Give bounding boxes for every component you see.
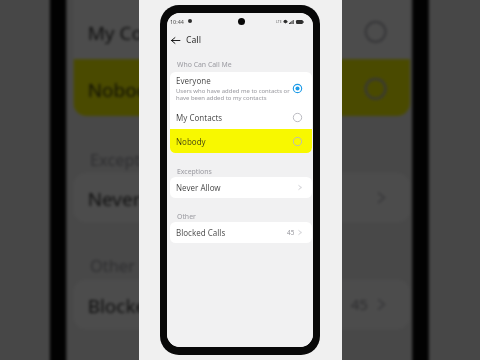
staticText: Blocked Calls [88, 291, 351, 317]
button[interactable]: Back [167, 29, 313, 51]
staticText: Everyone [176, 75, 211, 86]
staticText: My Contacts [88, 19, 365, 45]
button[interactable]: Blocked Calls [73, 279, 410, 329]
staticText: My Contacts [176, 112, 293, 123]
staticText: 45 [351, 294, 370, 315]
staticText: LTE [276, 19, 282, 24]
staticText: Call [186, 34, 202, 46]
button[interactable]: Nobody [73, 59, 410, 116]
button[interactable]: Everyone [73, 0, 410, 2]
staticText: Users who have added me to contacts or h… [176, 87, 290, 102]
staticText: Nobody [176, 136, 293, 147]
staticText: 10:44 [170, 18, 184, 25]
staticText: Blocked Calls [176, 227, 287, 238]
staticText: Who Can Call Me [177, 60, 232, 69]
button[interactable]: Blocked Calls [170, 222, 312, 243]
staticText: Nobody [88, 76, 365, 102]
staticText: 45 [287, 228, 295, 237]
button[interactable]: Never Allow [170, 177, 312, 198]
button[interactable]: My Contacts [170, 105, 312, 129]
button[interactable]: Back [169, 34, 182, 47]
button[interactable]: My Contacts [73, 2, 410, 59]
button[interactable]: Nobody [170, 129, 312, 153]
button[interactable]: Everyone [170, 72, 312, 105]
button[interactable]: Never Allow [73, 173, 410, 223]
staticText: Exceptions [90, 149, 173, 170]
staticText: Never Allow [88, 185, 377, 211]
staticText: Other [90, 256, 135, 277]
staticText: Exceptions [177, 167, 212, 176]
staticText: Other [177, 212, 196, 221]
staticText: Never Allow [176, 182, 298, 193]
